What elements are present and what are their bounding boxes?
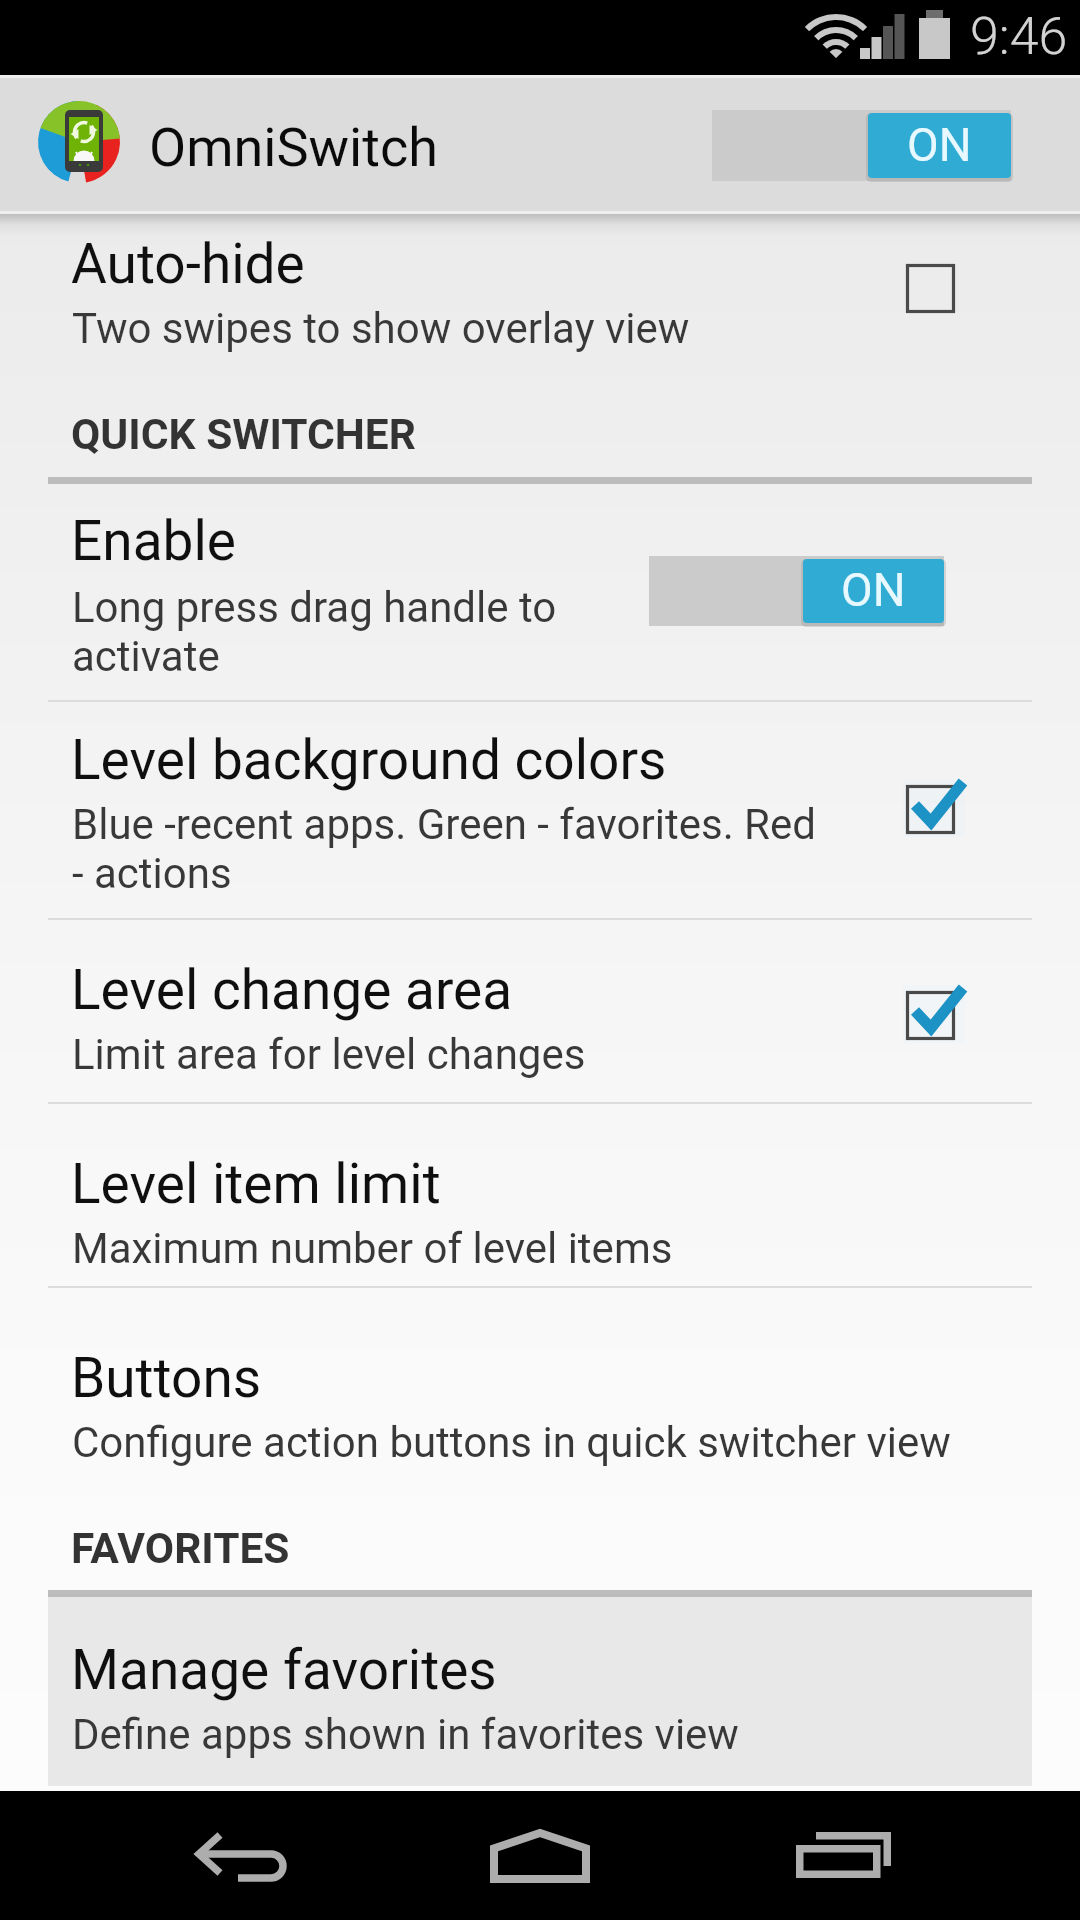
staticText: Configure action buttons in quick switch… xyxy=(72,1418,951,1467)
staticText: Level change area xyxy=(71,958,513,1022)
button[interactable]: Enable xyxy=(0,490,1080,700)
button[interactable]: Buttons xyxy=(0,1288,1080,1482)
staticText: Enable xyxy=(71,509,236,573)
button[interactable]: Auto-hide xyxy=(0,218,1080,376)
button[interactable]: Level background colors xyxy=(0,702,1080,918)
button[interactable]: Enabled, on xyxy=(649,556,944,630)
button[interactable]: Unchecked xyxy=(880,238,980,338)
button[interactable]: Home xyxy=(450,1791,630,1920)
staticText: Manage favorites xyxy=(71,1638,497,1702)
staticText: - actions xyxy=(72,849,232,898)
staticText: Define apps shown in favorites view xyxy=(72,1710,739,1759)
staticText: Level item limit xyxy=(71,1152,441,1216)
button[interactable]: Checked xyxy=(880,965,980,1065)
staticText: FAVORITES xyxy=(71,1524,290,1574)
staticText: ON xyxy=(907,118,972,172)
staticText: Limit area for level changes xyxy=(72,1030,586,1079)
button[interactable]: Recent apps xyxy=(753,1791,933,1920)
staticText: Two swipes to show overlay view xyxy=(72,304,690,353)
staticText: QUICK SWITCHER xyxy=(71,410,416,460)
staticText: Auto-hide xyxy=(71,232,305,296)
staticText: Maximum number of level items xyxy=(72,1224,673,1273)
staticText: Buttons xyxy=(71,1346,262,1410)
staticText: ON xyxy=(841,563,906,617)
button[interactable]: Checked xyxy=(880,759,980,859)
staticText: 9:46 xyxy=(970,6,1068,67)
button[interactable]: Manage favorites xyxy=(48,1597,1032,1786)
button[interactable]: Level change area xyxy=(0,920,1080,1102)
staticText: Long press drag handle to xyxy=(72,583,557,632)
button[interactable]: Level item limit xyxy=(0,1104,1080,1286)
staticText: OmniSwitch xyxy=(149,116,438,179)
button[interactable]: Back xyxy=(153,1795,333,1920)
button[interactable]: Enabled, on xyxy=(712,110,1011,185)
staticText: Blue -recent apps. Green - favorites. Re… xyxy=(72,800,816,849)
staticText: activate xyxy=(72,632,220,681)
staticText: Level background colors xyxy=(71,728,667,792)
other: OmniSwitch xyxy=(38,98,128,188)
